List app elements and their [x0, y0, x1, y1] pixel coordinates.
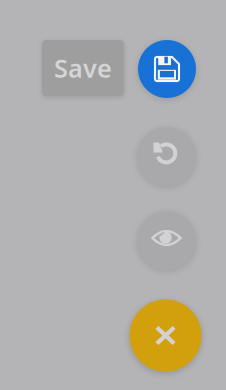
button[interactable]: Save: [42, 40, 124, 96]
button[interactable]: Preview: [137, 211, 196, 270]
button[interactable]: Close: [129, 299, 201, 371]
button[interactable]: Undo: [137, 127, 196, 186]
button[interactable]: Save: [138, 40, 196, 98]
staticText: Save: [54, 51, 112, 85]
